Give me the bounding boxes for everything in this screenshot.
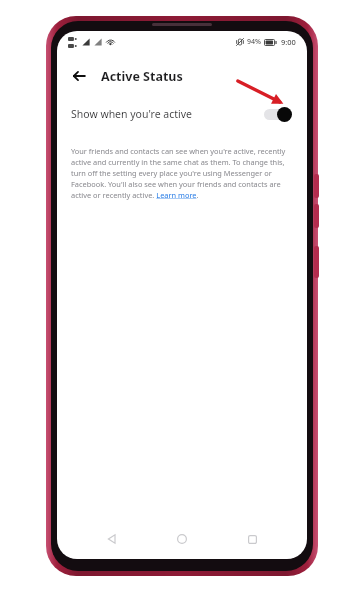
staticText: Show when you're active xyxy=(71,107,192,121)
button[interactable]: Volume down xyxy=(314,204,319,228)
staticText: 94% xyxy=(247,37,261,47)
staticText: Your friends and contacts can see when y… xyxy=(71,146,293,200)
staticText: 9:00 xyxy=(281,37,296,47)
button[interactable]: Recent apps xyxy=(237,524,267,554)
button[interactable]: Home xyxy=(167,524,197,554)
staticText: Active Status xyxy=(101,68,183,85)
button[interactable]: Show when you're active toggle xyxy=(263,105,293,123)
button[interactable]: Back xyxy=(66,63,92,89)
button[interactable]: Back xyxy=(97,524,127,554)
button[interactable]: Power xyxy=(314,246,319,278)
button[interactable]: Volume up xyxy=(314,174,319,198)
button[interactable]: Show when you're active xyxy=(57,98,307,130)
